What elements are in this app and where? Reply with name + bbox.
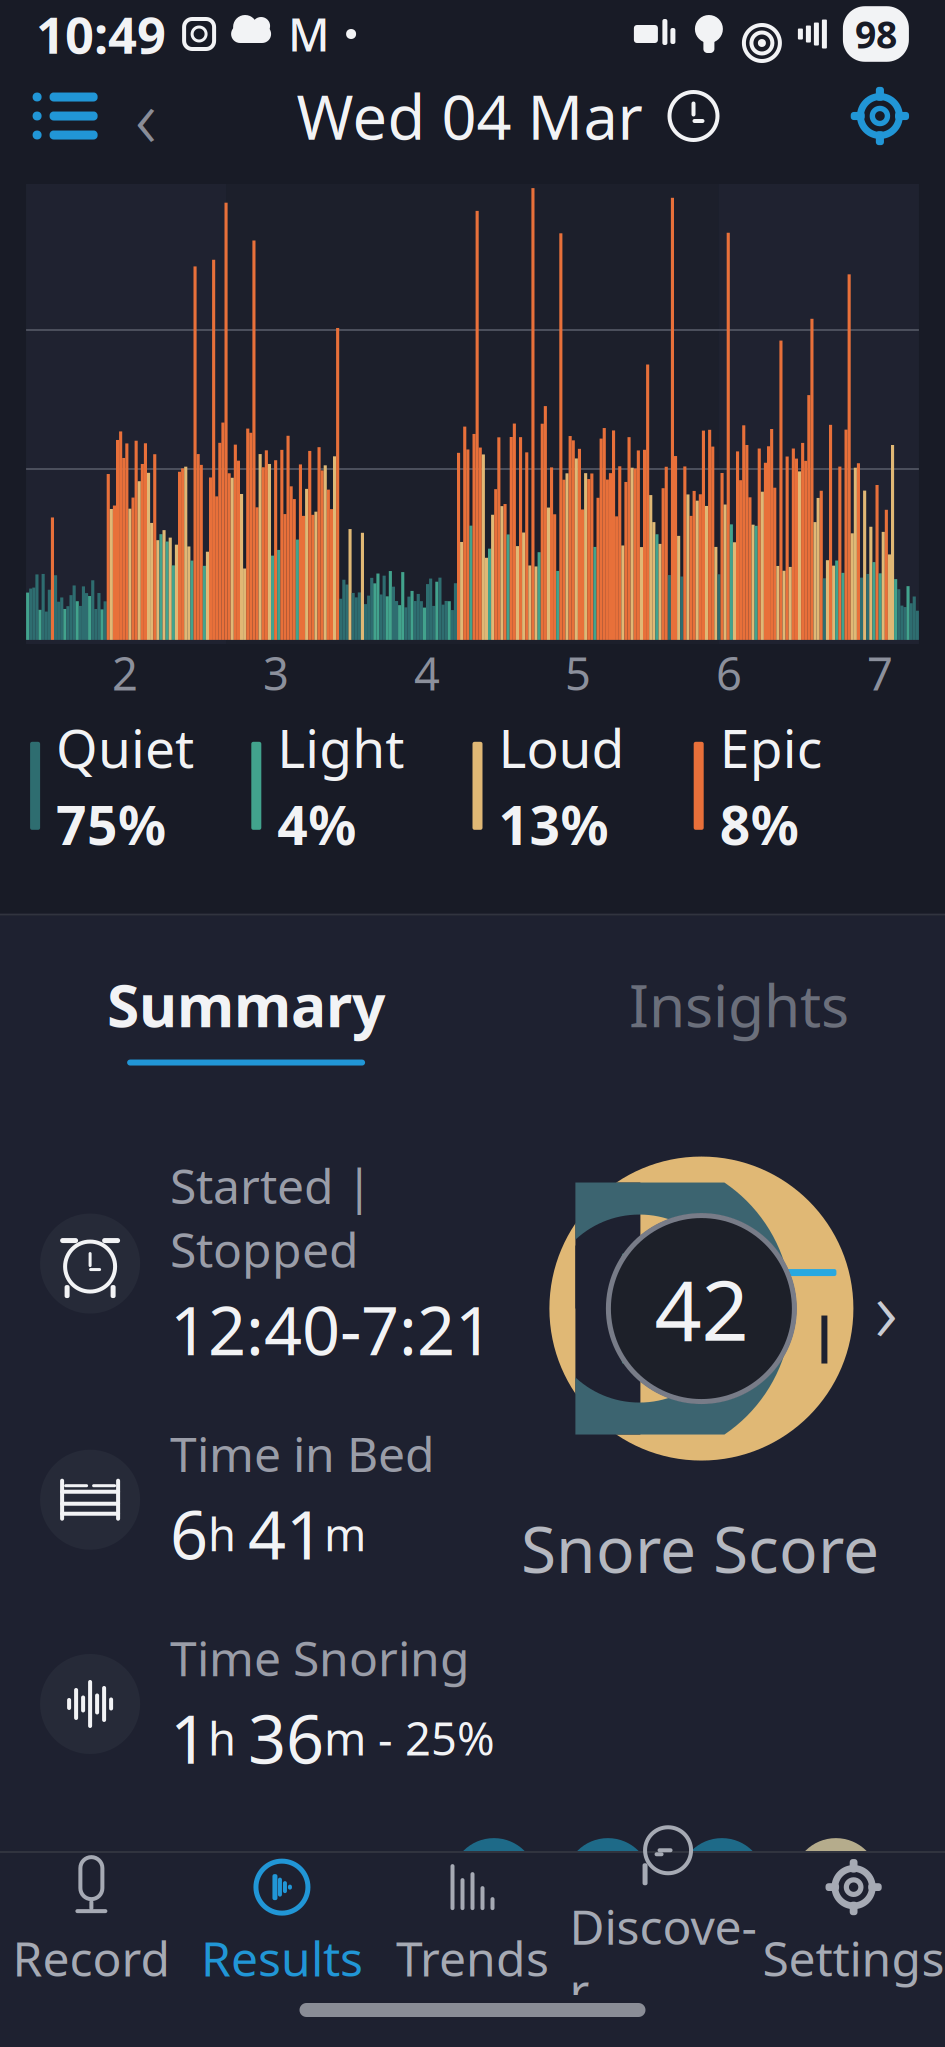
button[interactable]: Trends [377,1853,568,1995]
staticText: h [208,1503,248,1564]
staticText: Time in Bed [170,1422,435,1485]
staticText: 36 [248,1694,324,1782]
button[interactable]: Sleep position [565,1838,651,1924]
staticText: Insights [629,966,849,1043]
staticText: Trends [396,1926,549,1990]
staticText: 6 [716,643,742,703]
staticText: Record [12,1926,170,1990]
staticText: Summary [107,966,385,1043]
staticText: 4% [277,789,356,860]
staticText: Wed 04 Mar [296,75,642,157]
button[interactable]: Results [187,1853,377,1995]
staticText: Light [277,712,404,783]
staticText: Discover [570,1894,757,2022]
button[interactable]: Add [793,1838,879,1924]
staticText: Time Snoring [170,1626,470,1689]
button[interactable]: Discover [568,1853,758,1995]
staticText: 8% [720,789,799,860]
staticText: Quiet [56,712,194,783]
button[interactable]: Noise level [451,1838,537,1924]
staticText: 7 [867,643,893,703]
button[interactable]: Record [0,1853,187,1995]
staticText: Snore Score [521,1506,879,1591]
staticText: Epic [720,712,823,783]
staticText: h [208,1708,248,1768]
button[interactable]: Settings [758,1853,945,1995]
staticText: 1 [170,1694,208,1782]
staticText: 3 [263,643,289,703]
staticText: 10:49 [36,0,166,68]
staticText: › [874,1250,897,1367]
staticText: 12:40-7:21 [170,1285,493,1373]
staticText: m - 25% [324,1708,495,1768]
button[interactable]: Session time [662,85,724,147]
staticText: 13% [498,789,608,860]
staticText: Started | Stopped [170,1154,372,1281]
staticText: 6 [170,1489,208,1578]
staticText: Settings [763,1926,945,1990]
button[interactable]: 42 [521,1154,923,1591]
staticText: 4 [414,643,440,703]
button[interactable]: Back [108,73,184,159]
staticText: 42 [654,1254,748,1363]
button[interactable]: Menu [22,73,108,159]
staticText: 5 [565,643,591,703]
staticText: ‹ [135,61,157,171]
staticText: m [324,1503,366,1564]
staticText: M [288,4,330,64]
staticText: Results [201,1926,363,1990]
staticText: 2 [112,643,138,703]
button[interactable]: Summary [96,966,396,1065]
staticText: 41 [248,1489,324,1578]
staticText: 75% [56,789,166,860]
button[interactable]: Settings [837,73,923,159]
button[interactable]: Insights [589,966,889,1065]
staticText: Loud [498,712,624,783]
button[interactable]: Nasal [679,1838,765,1924]
staticText: 98 [855,9,897,59]
